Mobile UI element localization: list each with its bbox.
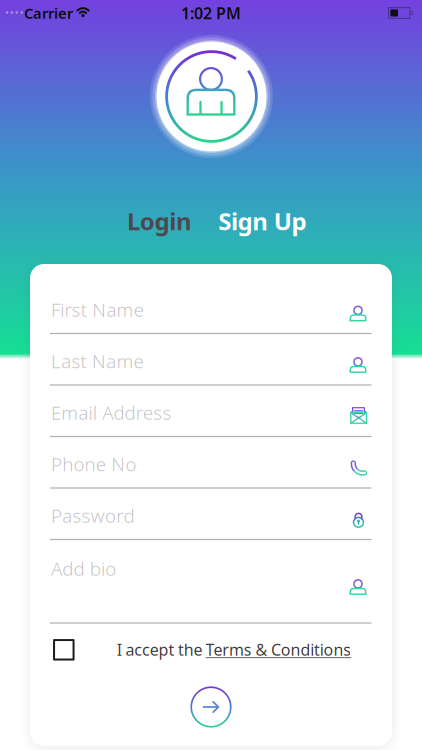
staticText: Last Name: [51, 349, 144, 373]
staticText: 1:02 PM: [181, 2, 241, 24]
button[interactable]: Sign Up: [215, 204, 309, 238]
button[interactable]: Password: [48, 487, 374, 543]
staticText: Phone No: [51, 452, 136, 476]
button[interactable]: Terms & Conditions: [206, 639, 351, 660]
button[interactable]: Login: [119, 204, 199, 238]
button[interactable]: Phone No: [48, 436, 374, 492]
staticText: I accept the: [117, 639, 203, 660]
staticText: Add bio: [51, 556, 116, 581]
staticText: Sign Up: [218, 205, 306, 237]
button[interactable]: First Name: [48, 281, 374, 337]
button[interactable]: Submit: [189, 685, 233, 729]
button[interactable]: Accept terms checkbox: [48, 634, 80, 666]
staticText: First Name: [51, 297, 144, 322]
staticText: Carrier: [24, 3, 73, 23]
button[interactable]: Add bio: [48, 550, 374, 628]
button[interactable]: Email Address: [48, 384, 374, 440]
staticText: Terms & Conditions: [206, 639, 351, 660]
staticText: Login: [127, 205, 192, 237]
staticText: Email Address: [51, 400, 171, 425]
button[interactable]: Last Name: [48, 333, 374, 389]
staticText: Password: [51, 503, 134, 528]
